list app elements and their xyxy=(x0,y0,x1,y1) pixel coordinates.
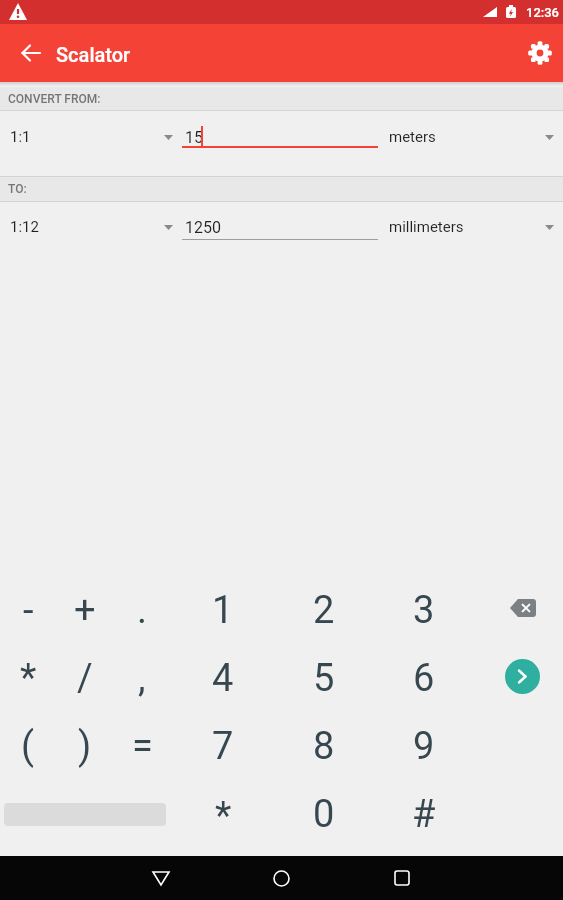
staticText: + xyxy=(74,588,96,633)
button[interactable]: * xyxy=(0,650,56,706)
staticText: Scalator xyxy=(56,43,131,66)
button[interactable]: # xyxy=(396,786,452,842)
button[interactable] xyxy=(522,35,558,71)
button[interactable]: ) xyxy=(57,718,113,774)
staticText: ) xyxy=(78,724,92,769)
button[interactable]: 3 xyxy=(396,582,452,638)
button[interactable]: 6 xyxy=(396,650,452,706)
button[interactable]: 2 xyxy=(296,582,352,638)
button[interactable] xyxy=(257,857,305,899)
button[interactable]: = xyxy=(114,718,170,774)
staticText: - xyxy=(23,588,34,633)
button[interactable] xyxy=(137,857,185,899)
button[interactable]: 1:1 xyxy=(10,125,70,149)
button[interactable]: millimeters xyxy=(389,215,499,239)
staticText: 5 xyxy=(313,656,335,701)
staticText: CONVERT FROM: xyxy=(8,92,101,106)
staticText: 1250 xyxy=(185,218,221,237)
staticText: / xyxy=(77,656,93,701)
staticText: 15 xyxy=(185,128,203,147)
staticText: millimeters xyxy=(389,218,464,236)
button[interactable]: meters xyxy=(389,125,479,149)
staticText: # xyxy=(412,792,436,837)
button[interactable]: 1:12 xyxy=(10,215,70,239)
staticText: 7 xyxy=(212,724,234,769)
button[interactable] xyxy=(378,857,426,899)
staticText: 1:1 xyxy=(10,128,31,146)
button[interactable]: 1 xyxy=(195,582,251,638)
staticText: = xyxy=(132,724,153,769)
button[interactable]: / xyxy=(57,650,113,706)
staticText: , xyxy=(138,656,146,701)
button[interactable] xyxy=(505,659,540,694)
staticText: * xyxy=(215,794,232,839)
staticText: 12:36 xyxy=(526,5,560,20)
button[interactable]: 4 xyxy=(195,650,251,706)
button[interactable]: 9 xyxy=(396,718,452,774)
staticText: ( xyxy=(21,724,35,769)
staticText: 1 xyxy=(212,588,234,633)
staticText: 3 xyxy=(413,588,435,633)
staticText: 6 xyxy=(413,656,435,701)
staticText: * xyxy=(20,656,37,701)
button[interactable] xyxy=(504,592,542,624)
staticText: . xyxy=(137,588,148,633)
staticText: 9 xyxy=(413,724,435,769)
staticText: 2 xyxy=(313,588,335,633)
button[interactable]: 7 xyxy=(195,718,251,774)
staticText: 8 xyxy=(313,724,335,769)
button[interactable]: + xyxy=(57,582,113,638)
button[interactable]: * xyxy=(195,788,251,844)
button[interactable]: 0 xyxy=(296,786,352,842)
button[interactable]: . xyxy=(114,582,170,638)
button[interactable]: ( xyxy=(0,718,56,774)
staticText: meters xyxy=(389,128,436,146)
button[interactable]: 8 xyxy=(296,718,352,774)
button[interactable]: 5 xyxy=(296,650,352,706)
staticText: TO: xyxy=(8,182,27,196)
button[interactable] xyxy=(13,35,49,71)
button[interactable]: , xyxy=(114,650,170,706)
button[interactable]: - xyxy=(0,582,56,638)
staticText: 0 xyxy=(313,792,335,837)
staticText: 1:12 xyxy=(10,218,39,236)
staticText: 4 xyxy=(212,656,234,701)
